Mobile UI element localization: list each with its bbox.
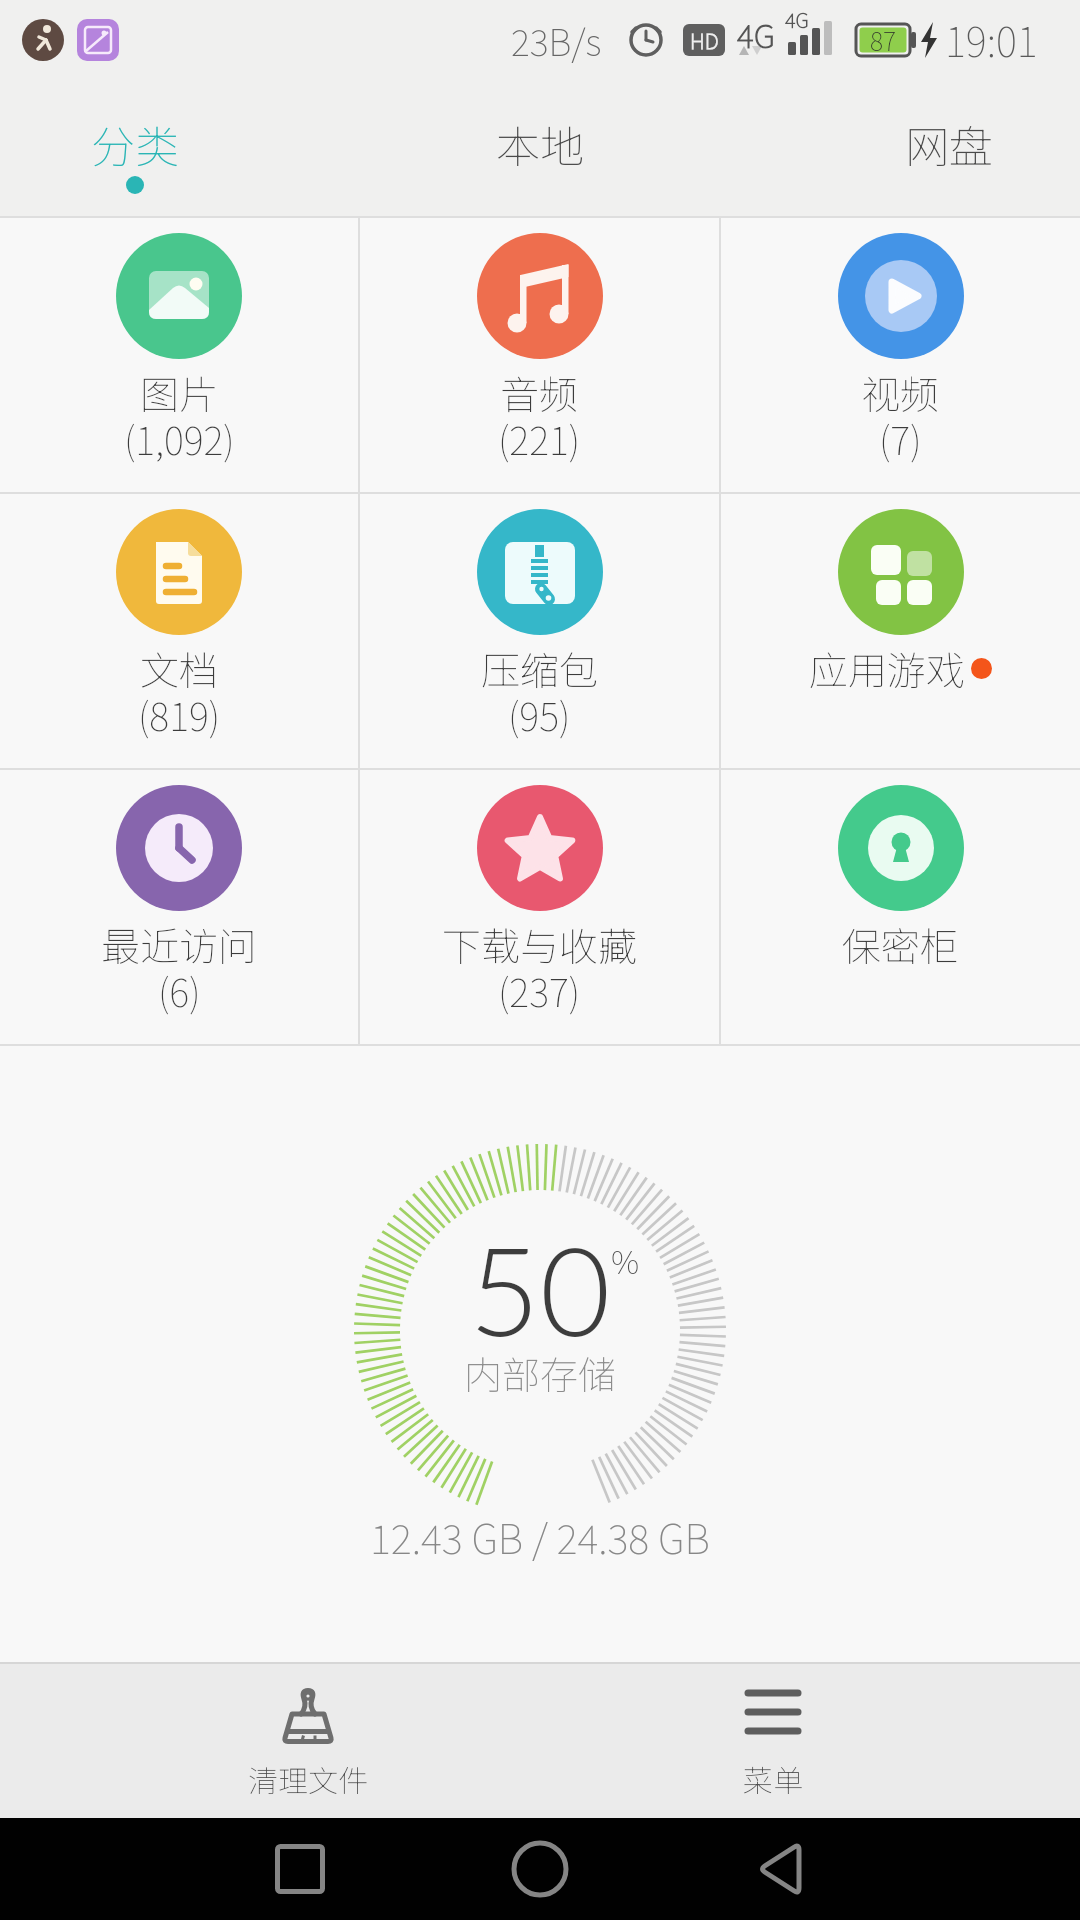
button[interactable]: 视频 [721, 218, 1080, 492]
staticText: (6) [158, 963, 201, 1018]
staticText: 内部存储 [464, 1345, 617, 1400]
button[interactable]: 网盘 [874, 64, 1024, 216]
staticText: HD [690, 25, 719, 55]
staticText: 文档 [140, 640, 219, 696]
staticText: 音频 [500, 364, 579, 420]
button[interactable] [720, 1818, 840, 1920]
staticText: 4G [785, 5, 809, 34]
staticText: (95) [508, 687, 571, 742]
staticText: 分类 [91, 112, 179, 176]
staticText: 清理文件 [248, 1757, 368, 1800]
button[interactable]: 本地 [465, 64, 615, 216]
staticText: 23B/s [511, 14, 602, 66]
staticText: 视频 [861, 364, 940, 420]
button[interactable] [240, 1818, 360, 1920]
button[interactable]: 下载与收藏 [360, 770, 719, 1044]
staticText: 保密柜 [842, 916, 960, 972]
button[interactable] [480, 1818, 600, 1920]
staticText: (819) [138, 687, 221, 742]
staticText: 网盘 [905, 112, 993, 176]
staticText: (1,092) [124, 411, 235, 466]
staticText: 下载与收藏 [442, 916, 638, 972]
staticText: 4G [737, 11, 775, 57]
staticText: 87 [870, 22, 897, 58]
staticText: 压缩包 [481, 640, 599, 696]
staticText: (7) [879, 411, 922, 466]
staticText: (237) [498, 963, 581, 1018]
staticText: % [611, 1237, 640, 1283]
staticText: 图片 [140, 364, 219, 420]
button[interactable]: 音频 [360, 218, 719, 492]
button[interactable]: 压缩包 [360, 494, 719, 768]
staticText: 菜单 [743, 1757, 803, 1800]
button[interactable]: 应用游戏 [721, 494, 1080, 768]
button[interactable]: 分类 [60, 64, 210, 216]
staticText: 最近访问 [101, 916, 258, 972]
button[interactable]: 菜单 [643, 1664, 903, 1818]
button[interactable]: 图片 [0, 218, 358, 492]
staticText: 50 [469, 1216, 611, 1362]
staticText: 本地 [496, 112, 584, 176]
button[interactable]: 清理文件 [178, 1664, 438, 1818]
button[interactable]: 保密柜 [721, 770, 1080, 1044]
button[interactable]: 文档 [0, 494, 358, 768]
staticText: 应用游戏 [809, 640, 966, 696]
staticText: 19:01 [945, 11, 1038, 69]
staticText: 12.43 GB / 24.38 GB [370, 1508, 710, 1566]
staticText: (221) [498, 411, 581, 466]
button[interactable]: 最近访问 [0, 770, 358, 1044]
